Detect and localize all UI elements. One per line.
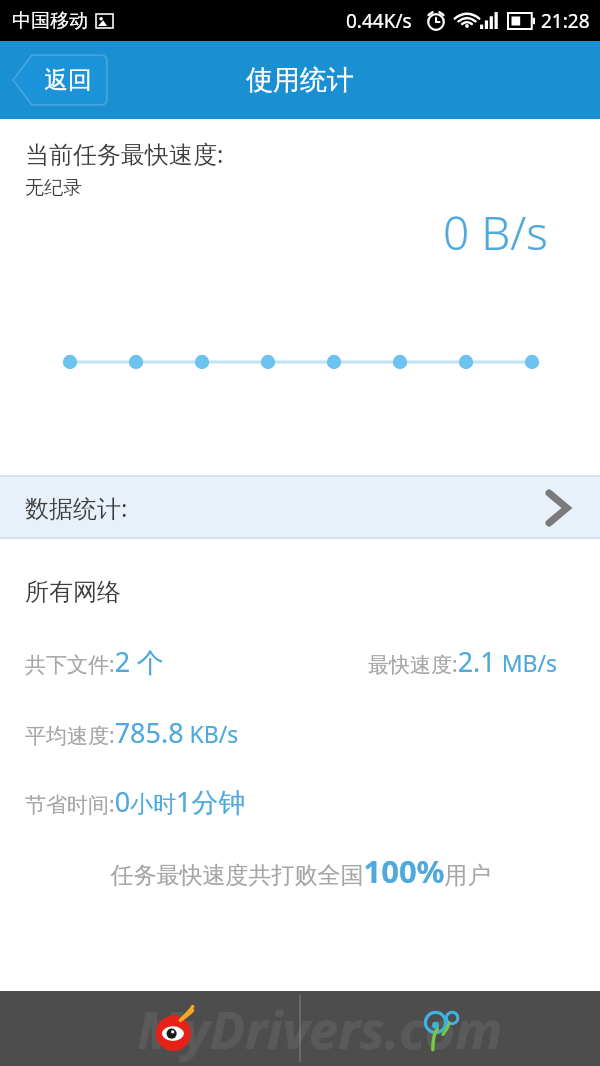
staticText: 使用统计 <box>246 63 354 97</box>
staticText: MyDrivers.com <box>137 993 503 1064</box>
staticText: 当前任务最快速度: <box>25 137 224 170</box>
button[interactable]: 分享 <box>300 991 600 1066</box>
staticText: 所有网络 <box>25 577 121 607</box>
staticText: 0.44K/s <box>346 8 412 34</box>
staticText: 中国移动 <box>12 9 88 33</box>
staticText: 0 B/s <box>443 201 548 264</box>
staticText: 平均速度:785.8 KB/s <box>25 714 239 751</box>
staticText: 数据统计: <box>25 491 128 524</box>
staticText: 无纪录 <box>25 176 82 200</box>
button[interactable]: Weibo 分享 <box>0 991 300 1066</box>
staticText: 共下文件:2 个 <box>25 643 165 680</box>
staticText: 21:28 <box>541 8 590 34</box>
button[interactable]: 数据统计: <box>0 476 600 539</box>
staticText: 节省时间:0小时1分钟 <box>25 783 246 820</box>
button[interactable]: 返回 <box>13 55 107 105</box>
staticText: 返回 <box>44 65 92 95</box>
staticText: 最快速度:2.1 MB/s <box>368 643 558 680</box>
staticText: 任务最快速度共打败全国100%用户 <box>110 850 491 892</box>
